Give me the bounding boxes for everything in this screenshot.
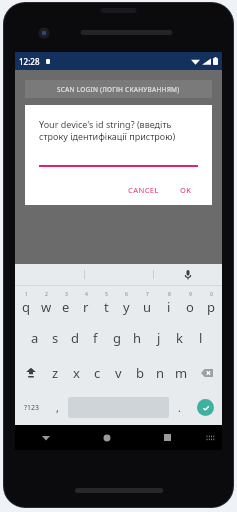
button[interactable]: 8 [158,286,179,320]
staticText: r [83,298,89,316]
staticText: a [31,329,39,347]
button[interactable]: CANCEL [122,181,165,199]
staticText: b [136,364,144,382]
button[interactable]: 5 [96,286,116,320]
staticText: w [41,298,52,316]
button[interactable]: z [45,355,66,390]
staticText: 1 [25,291,28,298]
button[interactable]: Back [15,425,76,450]
staticText: v [115,364,122,382]
button[interactable]: g [106,320,127,355]
staticText: , [56,400,59,415]
button[interactable]: Enter [197,399,214,416]
staticText: l [199,329,203,347]
button[interactable]: x [66,355,87,390]
button[interactable]: 7 [137,286,158,320]
staticText: . [178,400,181,415]
staticText: y [123,298,130,316]
staticText: k [176,329,183,347]
staticText: 4 [85,291,88,298]
button[interactable]: k [169,320,190,355]
button[interactable]: c [87,355,108,390]
staticText: h [133,329,142,347]
button[interactable]: Backspace [192,355,221,390]
staticText: 2 [45,291,48,298]
staticText: 5 [105,291,108,298]
staticText: n [156,364,165,382]
staticText: c [94,364,101,382]
staticText: j [157,329,161,347]
staticText: x [73,364,80,382]
button[interactable]: m [171,355,192,390]
staticText: t [104,298,109,316]
button[interactable]: j [148,320,169,355]
staticText: 3 [65,291,68,298]
staticText: u [143,298,152,316]
staticText: q [22,298,30,316]
staticText: f [93,329,98,347]
button[interactable]: d [65,320,85,355]
staticText: 8 [168,291,171,298]
button[interactable]: h [127,320,148,355]
button[interactable]: f [85,320,106,355]
button[interactable]: 4 [76,286,96,320]
button[interactable]: 6 [116,286,137,320]
button[interactable]: 1 [16,286,36,320]
staticText: g [113,329,121,347]
staticText: e [62,298,70,316]
staticText: 0 [210,291,213,298]
staticText: s [52,329,59,347]
button[interactable]: 9 [179,286,200,320]
button[interactable]: . [169,390,189,425]
staticText: z [52,364,59,382]
staticText: Your device's id string? (введіть строку… [39,118,198,143]
staticText: m [175,364,188,382]
staticText: SCAN LOGIN (ЛОГІН СКАНУВАННЯМ) [57,85,180,94]
button[interactable]: 2 [36,286,56,320]
staticText: p [207,298,215,316]
staticText: CANCEL [128,185,159,195]
button[interactable]: Change keyboard [198,425,222,450]
button[interactable]: SCAN LOGIN (ЛОГІН СКАНУВАННЯМ) [25,80,212,98]
button[interactable]: v [108,355,129,390]
staticText: ?123 [24,403,40,413]
button[interactable]: a [25,320,45,355]
button[interactable]: 0 [200,286,221,320]
button[interactable]: Shift [16,355,45,390]
button[interactable]: Recent apps [137,425,198,450]
button[interactable]: l [190,320,211,355]
staticText: 12:28 [19,56,40,67]
button[interactable]: 3 [56,286,76,320]
staticText: i [167,298,171,316]
staticText: d [71,329,79,347]
button[interactable]: n [150,355,171,390]
staticText: 7 [146,291,149,298]
button[interactable]: Home [76,425,137,450]
button[interactable]: s [45,320,65,355]
button[interactable]: b [129,355,150,390]
button[interactable]: Voice input [154,264,222,285]
button[interactable]: , [47,390,68,425]
staticText: 9 [189,291,192,298]
staticText: o [186,298,194,316]
button[interactable]: ?123 [16,390,47,425]
staticText: 6 [125,291,128,298]
staticText: OK [180,185,192,195]
button[interactable]: OK [174,181,198,199]
